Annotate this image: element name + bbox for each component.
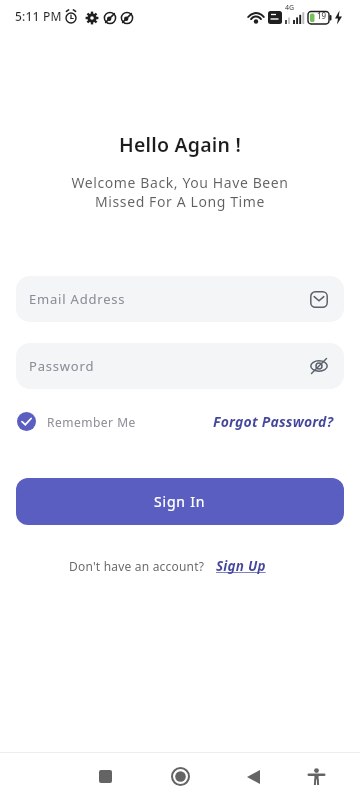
staticText: Hello Again ! <box>0 131 360 158</box>
button[interactable]: Email Address <box>16 276 344 322</box>
staticText: 19 <box>317 10 327 21</box>
staticText: Welcome Back, You Have Been Missed For A… <box>0 173 360 211</box>
button[interactable]: Remember Me <box>17 412 136 431</box>
button[interactable]: Sign Up <box>216 557 266 575</box>
button[interactable] <box>168 764 193 789</box>
staticText: Email Address <box>29 290 126 308</box>
button[interactable] <box>241 764 266 789</box>
button[interactable] <box>93 764 118 789</box>
staticText: Forgot Password? <box>213 412 334 431</box>
button[interactable]: Forgot Password? <box>213 412 334 431</box>
button[interactable]: Password <box>16 343 344 389</box>
staticText: Sign Up <box>216 557 266 575</box>
button[interactable]: Sign In <box>16 478 344 525</box>
staticText: 4G <box>285 3 295 13</box>
staticText: Password <box>29 357 95 375</box>
staticText: Don't have an account? <box>69 558 205 574</box>
staticText: Remember Me <box>47 414 136 430</box>
staticText: 5:11 PM <box>15 8 62 24</box>
button[interactable] <box>304 764 329 789</box>
staticText: Sign In <box>154 492 206 511</box>
